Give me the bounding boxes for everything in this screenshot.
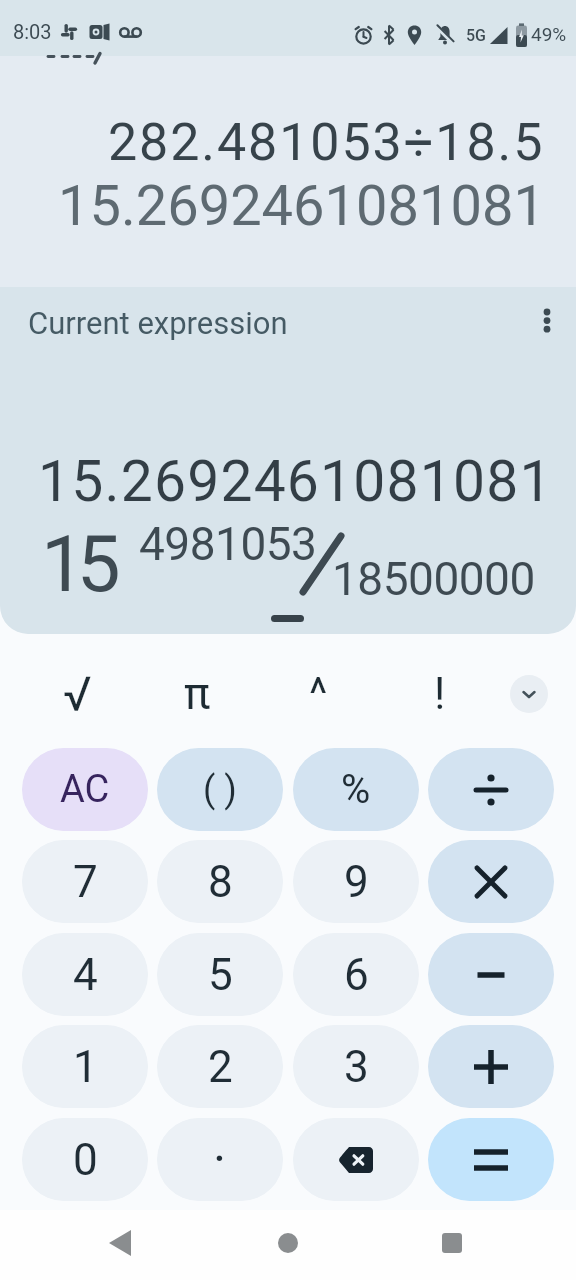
- button[interactable]: 2: [157, 1025, 283, 1108]
- button[interactable]: [428, 748, 554, 831]
- button[interactable]: ( ): [157, 748, 283, 831]
- staticText: 9: [344, 856, 369, 908]
- staticText: √: [63, 666, 92, 722]
- button[interactable]: [428, 933, 554, 1016]
- button[interactable]: ^: [283, 659, 353, 729]
- staticText: !: [434, 668, 446, 720]
- button[interactable]: [510, 675, 548, 713]
- button[interactable]: 4: [22, 933, 148, 1016]
- staticText: 49%: [531, 23, 567, 45]
- staticText: 4981053: [139, 517, 317, 571]
- button[interactable]: 5: [157, 933, 283, 1016]
- button[interactable]: 6: [293, 933, 419, 1016]
- staticText: Current expression: [28, 305, 288, 341]
- button[interactable]: [430, 1229, 474, 1257]
- button[interactable]: [428, 1025, 554, 1108]
- staticText: 5G: [466, 26, 486, 45]
- staticText: ^: [309, 668, 328, 720]
- staticText: AC: [60, 767, 110, 812]
- staticText: 282.481053÷18.5: [108, 112, 545, 173]
- staticText: 15.2692461081081: [58, 173, 545, 239]
- staticText: 3: [344, 1041, 369, 1093]
- staticText: 0: [73, 1134, 98, 1186]
- button[interactable]: [428, 840, 554, 923]
- button[interactable]: [266, 1229, 310, 1257]
- staticText: 2: [208, 1041, 233, 1093]
- button[interactable]: √: [42, 659, 112, 729]
- button[interactable]: [531, 300, 563, 340]
- button[interactable]: AC: [22, 748, 148, 831]
- button[interactable]: 0: [22, 1118, 148, 1201]
- staticText: π: [184, 668, 211, 720]
- button[interactable]: π: [162, 659, 232, 729]
- staticText: 15: [41, 519, 113, 610]
- button[interactable]: 7: [22, 840, 148, 923]
- staticText: ·: [213, 1130, 227, 1189]
- staticText: ( ): [203, 769, 237, 811]
- button[interactable]: %: [293, 748, 419, 831]
- staticText: 1: [73, 1041, 98, 1093]
- staticText: 8: [208, 856, 233, 908]
- button[interactable]: 9: [293, 840, 419, 923]
- staticText: 8:03: [13, 20, 52, 43]
- button[interactable]: ·: [157, 1118, 283, 1201]
- button[interactable]: [428, 1118, 554, 1201]
- button[interactable]: 3: [293, 1025, 419, 1108]
- staticText: 18500000: [332, 552, 535, 606]
- staticText: 7: [73, 856, 98, 908]
- button[interactable]: !: [405, 659, 475, 729]
- button[interactable]: 8: [157, 840, 283, 923]
- button[interactable]: [293, 1118, 419, 1201]
- staticText: 5: [208, 949, 233, 1001]
- staticText: 15.2692461081081: [38, 448, 553, 515]
- staticText: 4: [73, 949, 98, 1001]
- button[interactable]: 1: [22, 1025, 148, 1108]
- staticText: 6: [344, 949, 369, 1001]
- button[interactable]: [98, 1229, 142, 1257]
- staticText: %: [341, 766, 371, 813]
